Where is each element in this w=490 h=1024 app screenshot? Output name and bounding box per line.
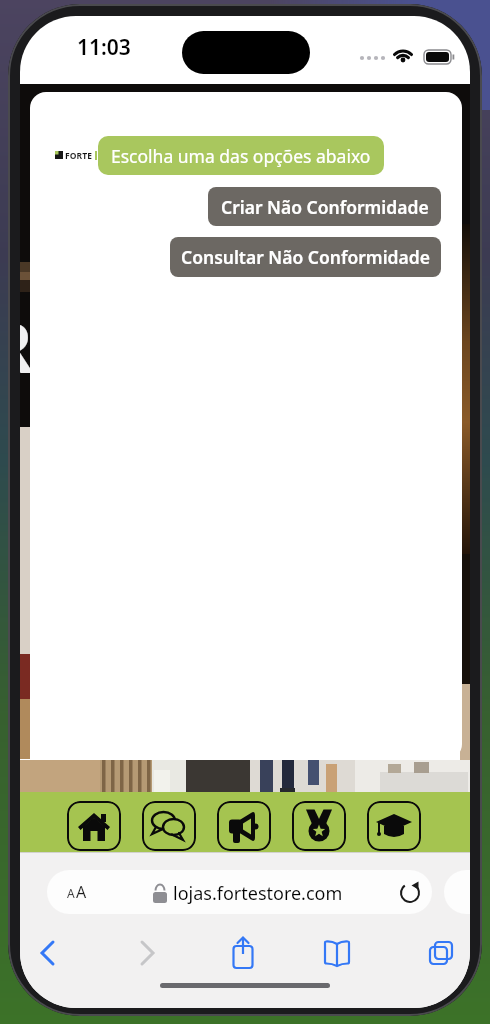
button[interactable] — [221, 933, 265, 975]
button[interactable] — [217, 801, 271, 851]
button[interactable] — [367, 801, 421, 851]
staticText: Consultar Não Conformidade — [181, 245, 430, 269]
staticText: 11:03 — [77, 33, 131, 62]
button[interactable] — [25, 933, 69, 975]
staticText: FORTE — [65, 150, 93, 162]
staticText: Criar Não Conformidade — [221, 195, 429, 219]
staticText: Escolha uma das opções abaixo — [111, 144, 371, 168]
staticText: lojas.fortestore.com — [173, 881, 343, 906]
button[interactable]: Consultar Não Conformidade — [170, 237, 441, 277]
button[interactable] — [67, 801, 121, 851]
button[interactable] — [47, 870, 432, 914]
staticText: A — [67, 885, 75, 901]
button[interactable] — [125, 933, 169, 975]
staticText: R — [20, 298, 33, 393]
button[interactable] — [292, 801, 346, 851]
button[interactable] — [315, 933, 359, 975]
button[interactable] — [414, 933, 458, 975]
button[interactable]: Criar Não Conformidade — [208, 187, 441, 226]
staticText: A — [76, 881, 87, 903]
button[interactable] — [142, 801, 196, 851]
